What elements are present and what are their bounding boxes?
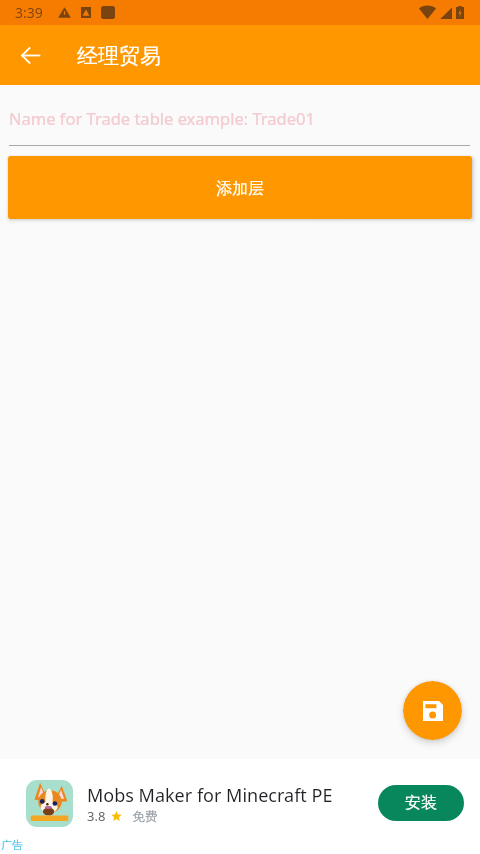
staticText: 免费 xyxy=(132,808,158,824)
button[interactable]: 添加层 xyxy=(8,156,472,219)
staticText: 添加层 xyxy=(216,179,264,199)
button[interactable]: 安装 xyxy=(378,785,464,821)
staticText: Name for Trade table example: Trade01 xyxy=(9,107,315,129)
staticText: 经理贸易 xyxy=(77,43,161,69)
button[interactable]: Save xyxy=(403,681,462,740)
staticText: 3:39 xyxy=(15,3,43,22)
staticText: 3.8 xyxy=(87,807,106,825)
button[interactable]: Back xyxy=(6,31,54,79)
staticText: 广告 xyxy=(1,838,23,852)
staticText: 安装 xyxy=(405,793,437,813)
staticText: Mobs Maker for Minecraft PE xyxy=(87,783,333,808)
